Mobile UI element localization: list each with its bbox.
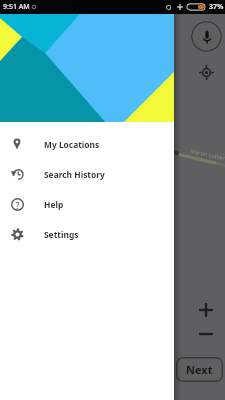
staticText: My Locations xyxy=(44,139,100,150)
staticText: Next xyxy=(186,362,213,377)
button[interactable]: Voice search xyxy=(191,21,222,52)
button[interactable]: My Locations xyxy=(0,129,174,159)
staticText: Search History xyxy=(44,169,105,180)
staticText: Help xyxy=(44,199,64,210)
button[interactable]: Zoom in xyxy=(197,301,214,318)
button[interactable]: Next xyxy=(176,357,223,382)
staticText: Settings xyxy=(44,229,79,240)
button[interactable]: Search History xyxy=(0,159,174,189)
staticText: ? xyxy=(15,199,20,211)
staticText: 37% xyxy=(209,2,224,12)
button[interactable]: Settings xyxy=(0,219,174,249)
staticText: 9:51 AM xyxy=(3,2,30,12)
staticText: Martin Luther King xyxy=(190,147,225,164)
button[interactable]: My location xyxy=(198,64,214,80)
button[interactable]: Zoom out xyxy=(197,325,214,342)
button[interactable]: ? xyxy=(0,189,174,219)
